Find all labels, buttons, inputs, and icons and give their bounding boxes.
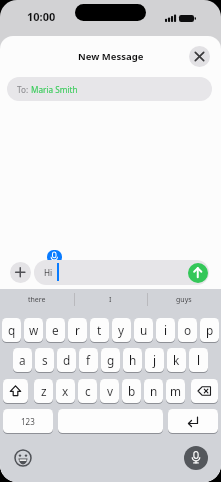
button[interactable]: e: [46, 318, 65, 342]
staticText: I: [109, 295, 112, 305]
staticText: j: [153, 352, 157, 368]
button[interactable]: y: [112, 318, 131, 342]
button[interactable]: To:: [7, 77, 212, 101]
staticText: Maria Smith: [31, 84, 78, 95]
staticText: e: [52, 322, 59, 338]
staticText: 123: [21, 416, 35, 427]
staticText: p: [206, 322, 214, 338]
button[interactable]: j: [145, 348, 164, 372]
button[interactable]: p: [200, 318, 219, 342]
button[interactable]: o: [178, 318, 197, 342]
button[interactable]: i: [156, 318, 175, 342]
staticText: u: [140, 322, 148, 338]
button[interactable]: w: [24, 318, 43, 342]
button[interactable]: r: [68, 318, 87, 342]
button[interactable]: there: [0, 290, 74, 309]
staticText: l: [197, 352, 201, 368]
button[interactable]: v: [100, 379, 119, 403]
button[interactable]: [189, 46, 210, 67]
button[interactable]: [184, 446, 208, 470]
staticText: q: [8, 322, 16, 338]
button[interactable]: a: [13, 348, 32, 372]
button[interactable]: q: [2, 318, 21, 342]
staticText: To:: [17, 84, 31, 95]
staticText: c: [85, 383, 91, 399]
button[interactable]: [191, 379, 218, 403]
staticText: k: [173, 352, 180, 368]
staticText: v: [107, 383, 113, 399]
staticText: h: [129, 352, 137, 368]
button[interactable]: x: [56, 379, 75, 403]
staticText: a: [19, 352, 26, 368]
button[interactable]: [188, 263, 208, 283]
staticText: s: [42, 352, 48, 368]
button[interactable]: d: [57, 348, 76, 372]
staticText: guys: [176, 295, 192, 305]
button[interactable]: k: [167, 348, 186, 372]
staticText: o: [184, 322, 192, 338]
staticText: b: [128, 383, 136, 399]
staticText: t: [97, 322, 102, 338]
button[interactable]: m: [166, 379, 185, 403]
button[interactable]: b: [122, 379, 141, 403]
button[interactable]: c: [78, 379, 97, 403]
staticText: x: [62, 383, 69, 399]
staticText: there: [28, 295, 46, 305]
button[interactable]: [13, 448, 33, 468]
button[interactable]: [10, 262, 31, 283]
button[interactable]: [168, 409, 218, 433]
staticText: d: [63, 352, 71, 368]
staticText: New Message: [78, 50, 144, 63]
button[interactable]: h: [123, 348, 142, 372]
button[interactable]: [3, 379, 28, 403]
button[interactable]: u: [134, 318, 153, 342]
staticText: y: [118, 322, 125, 338]
button[interactable]: g: [101, 348, 120, 372]
staticText: z: [41, 383, 47, 399]
staticText: i: [164, 322, 168, 338]
button[interactable]: l: [189, 348, 208, 372]
button[interactable]: Hi: [34, 260, 209, 285]
button[interactable]: [58, 409, 163, 433]
staticText: g: [107, 352, 115, 368]
button[interactable]: s: [35, 348, 54, 372]
staticText: m: [170, 383, 182, 399]
staticText: r: [75, 322, 80, 338]
staticText: w: [29, 322, 39, 338]
button[interactable]: guys: [147, 290, 221, 309]
staticText: 10:00: [27, 9, 56, 24]
button[interactable]: 123: [3, 409, 53, 433]
staticText: f: [86, 352, 91, 368]
staticText: n: [150, 383, 158, 399]
button[interactable]: n: [144, 379, 163, 403]
button[interactable]: f: [79, 348, 98, 372]
staticText: Hi: [44, 267, 53, 278]
button[interactable]: z: [34, 379, 53, 403]
button[interactable]: t: [90, 318, 109, 342]
button[interactable]: I: [74, 290, 147, 309]
